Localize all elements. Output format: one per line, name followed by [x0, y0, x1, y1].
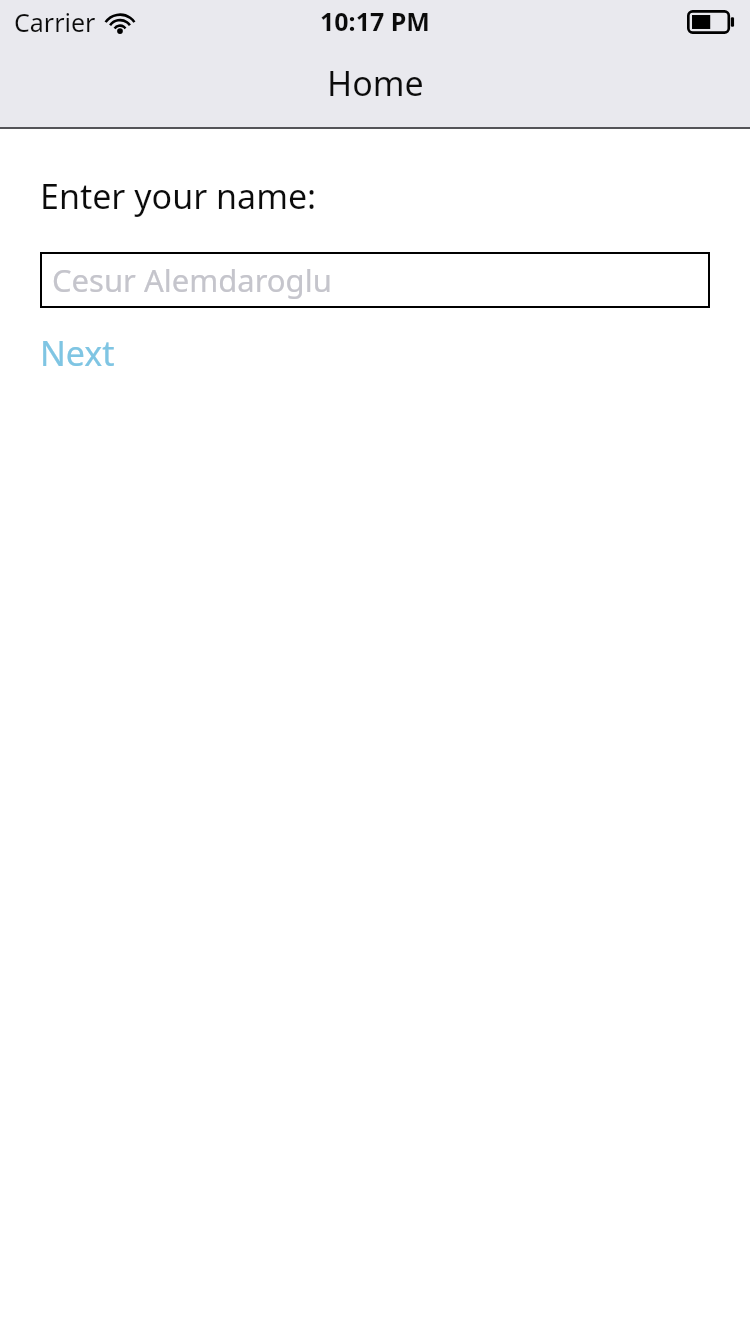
button[interactable]: Next	[40, 330, 115, 376]
other: Wi-Fi signal	[105, 12, 135, 34]
staticText: Cesur Alemdaroglu	[52, 259, 332, 301]
staticText: 10:17 PM	[320, 4, 430, 38]
button[interactable]: Cesur Alemdaroglu	[40, 252, 710, 308]
staticText: Home	[327, 60, 424, 106]
staticText: Next	[40, 330, 115, 376]
staticText: Carrier	[14, 5, 96, 39]
staticText: Enter your name:	[40, 173, 317, 219]
other: Battery 55 percent	[687, 10, 736, 34]
